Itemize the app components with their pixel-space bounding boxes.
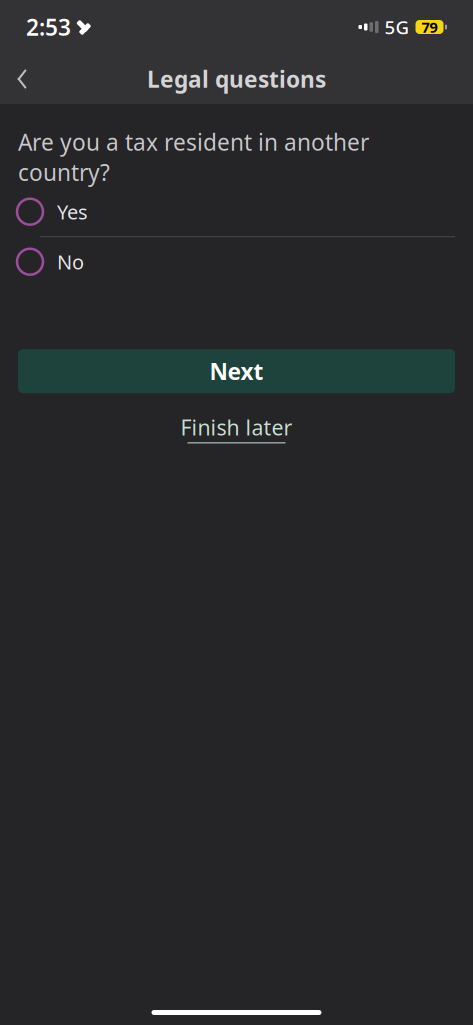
staticText: 79 (421, 17, 437, 37)
button[interactable]: Yes (0, 187, 473, 236)
staticText: Are you a tax resident in another countr… (18, 127, 369, 187)
button[interactable]: Next (18, 349, 455, 393)
staticText: Yes (57, 198, 88, 225)
button[interactable]: Finish later (180, 406, 292, 450)
button[interactable]: No (0, 237, 473, 286)
staticText: Finish later (180, 413, 292, 441)
staticText: Next (209, 356, 263, 386)
staticText: Legal questions (147, 64, 326, 94)
staticText: No (57, 248, 84, 275)
staticText: 5G (384, 15, 409, 39)
button[interactable]: Back (0, 57, 44, 101)
staticText: 2:53 (26, 12, 71, 42)
